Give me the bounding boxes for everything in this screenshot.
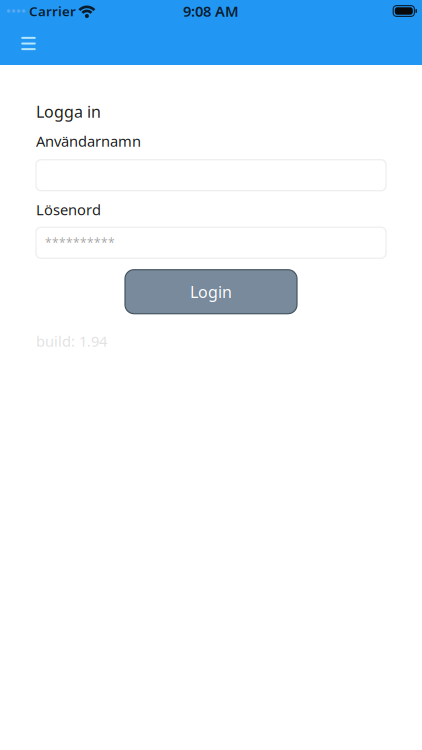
staticText: Logga in bbox=[36, 101, 101, 122]
staticText: build: 1.94 bbox=[36, 331, 107, 351]
button[interactable]: Menu bbox=[0, 22, 50, 64]
staticText: ********** bbox=[45, 235, 115, 251]
button[interactable]: Login bbox=[125, 270, 297, 314]
staticText: Lösenord bbox=[36, 200, 101, 219]
staticText: 9:08 AM bbox=[183, 1, 239, 21]
staticText: Carrier bbox=[29, 2, 76, 20]
button[interactable]: Lösenord bbox=[36, 227, 386, 258]
staticText: Login bbox=[190, 281, 232, 302]
button[interactable]: Användarnamn bbox=[36, 160, 386, 191]
staticText: Användarnamn bbox=[36, 131, 141, 151]
